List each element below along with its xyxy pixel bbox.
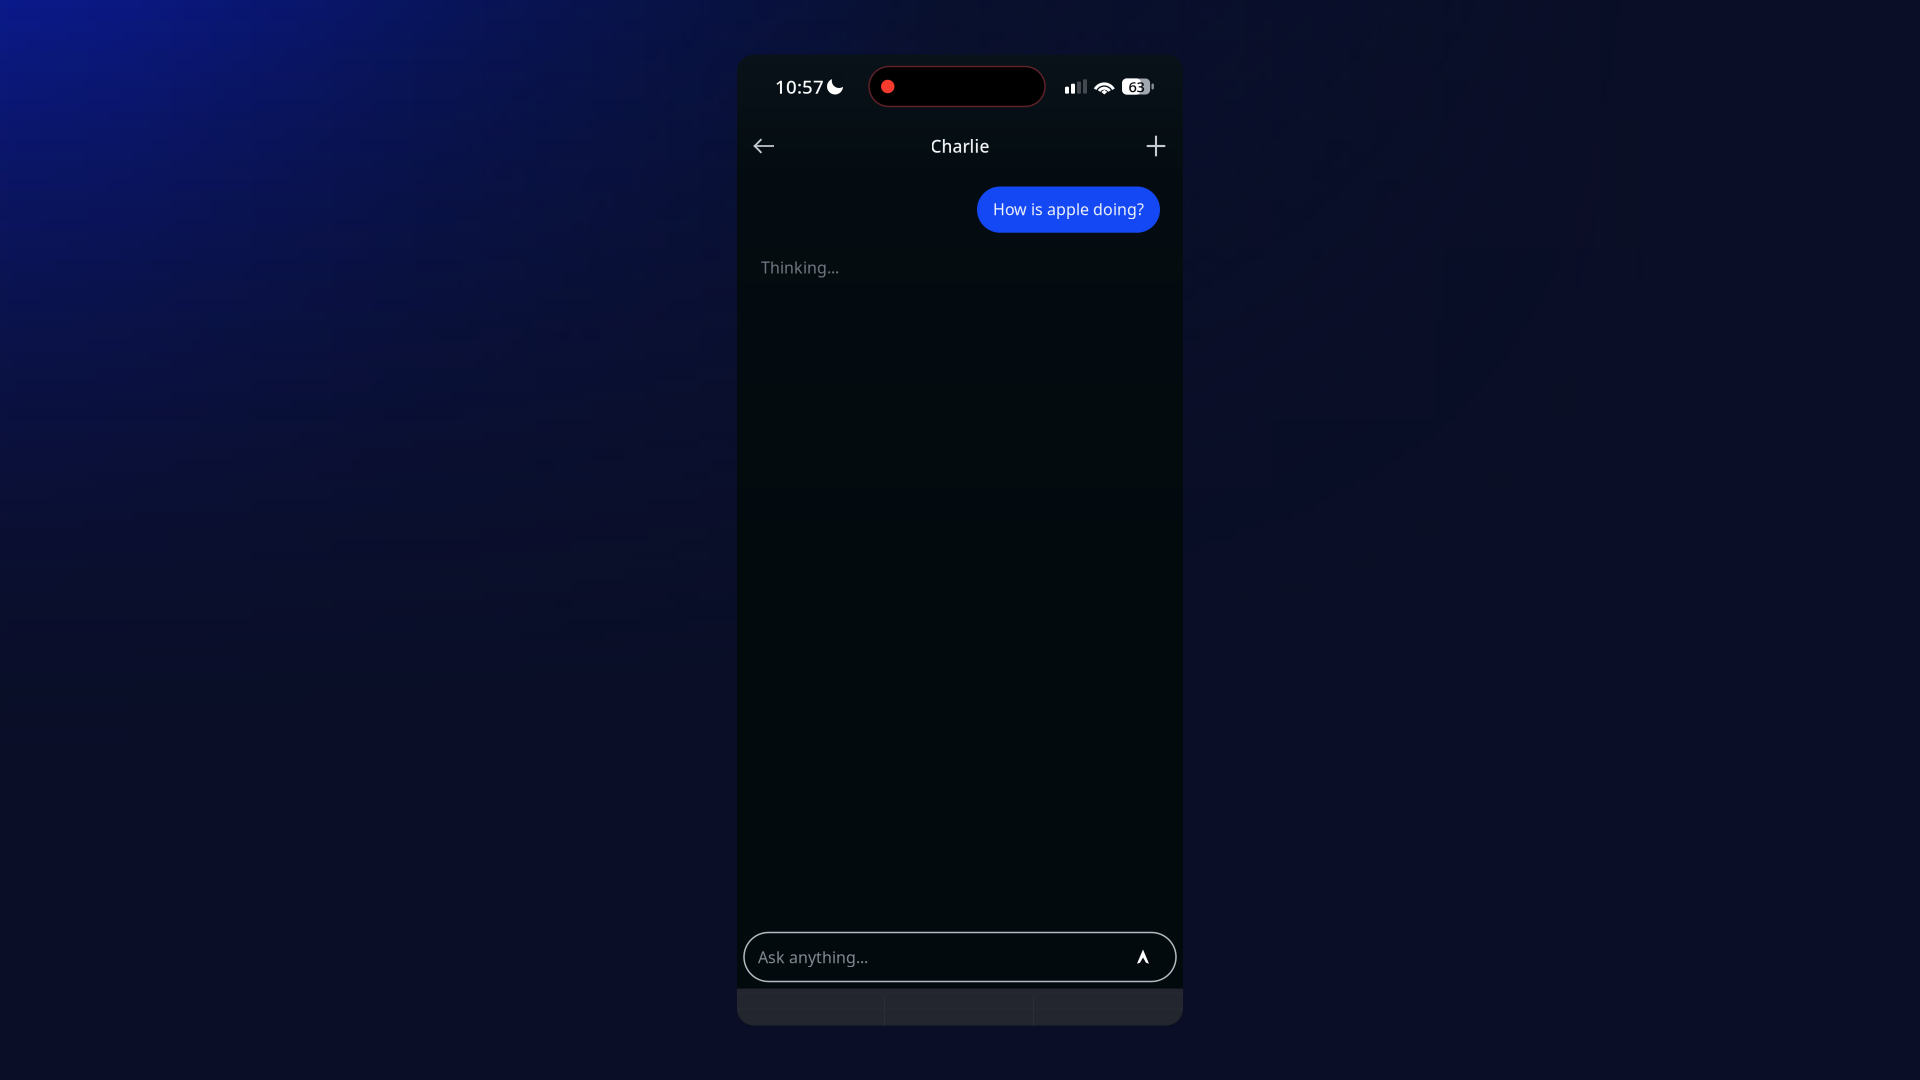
button[interactable]: New conversation <box>1134 124 1178 168</box>
staticText: How is apple doing? <box>993 198 1144 220</box>
staticText: Charlie <box>930 134 989 157</box>
staticText: Thinking... <box>761 257 839 278</box>
button[interactable]: Back <box>742 124 786 168</box>
staticText: Ask anything... <box>758 946 868 968</box>
staticText: 63 <box>1129 77 1145 96</box>
button[interactable]: Ask anything <box>744 932 1176 981</box>
staticText: 10:57 <box>775 74 824 99</box>
